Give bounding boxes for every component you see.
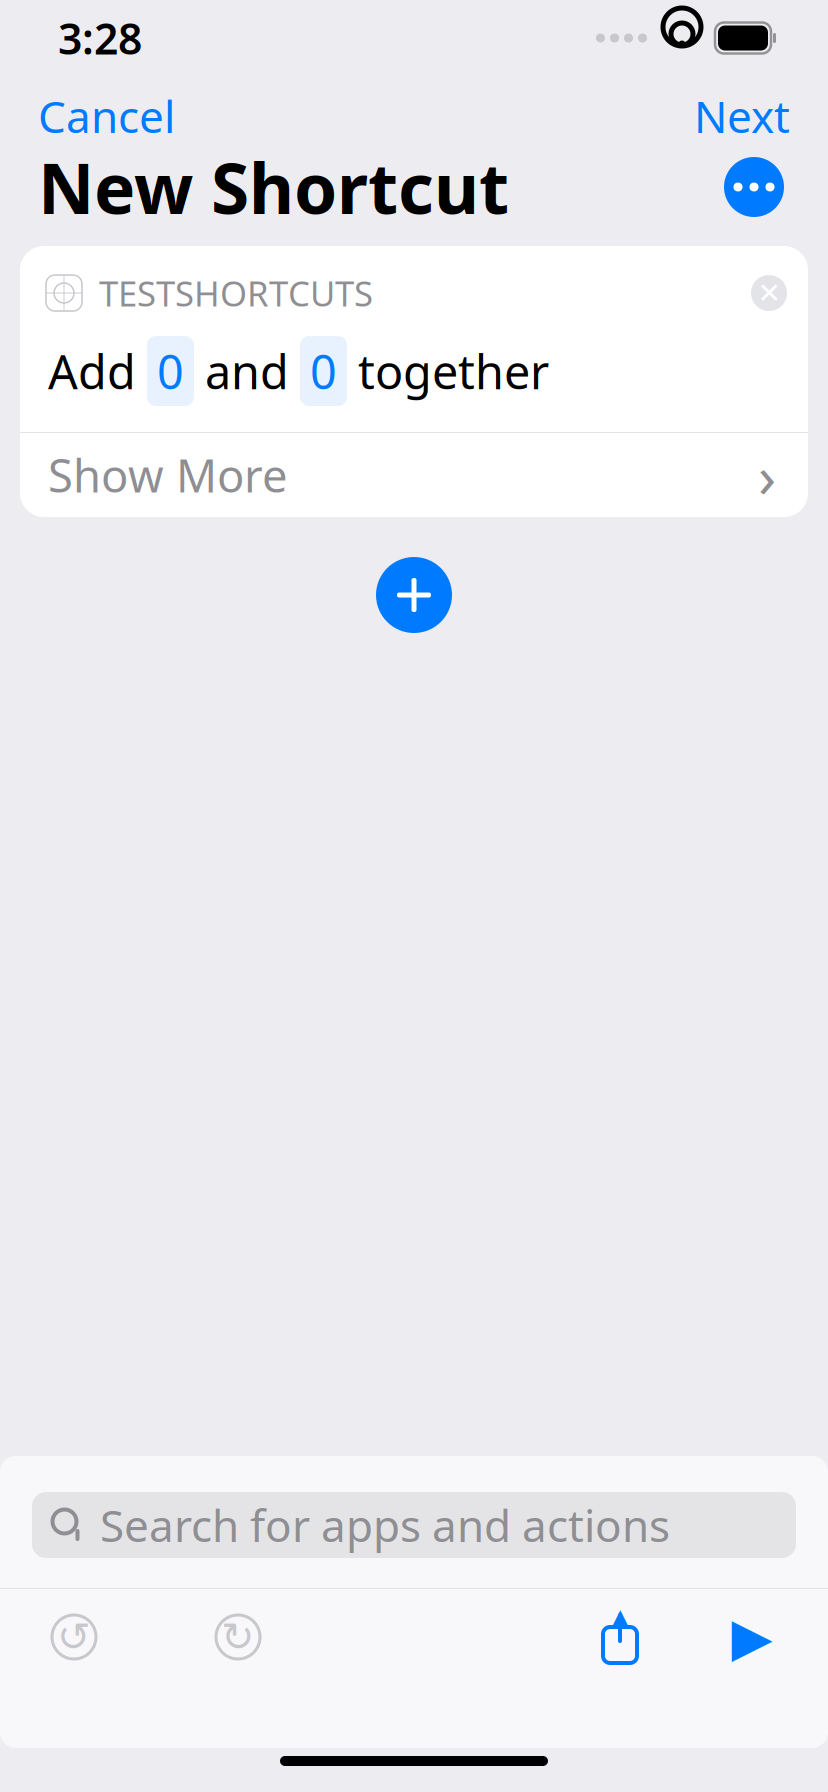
staticText: ↺ <box>57 1614 91 1660</box>
staticText: Add <box>48 340 136 402</box>
button[interactable]: Cancel <box>38 81 175 151</box>
staticText: Next <box>694 87 790 145</box>
button[interactable]: Share <box>586 1609 654 1665</box>
staticText: TESTSHORTCUTS <box>99 270 373 316</box>
staticText: Search for apps and actions <box>100 1496 670 1554</box>
button[interactable]: Undo <box>40 1613 108 1661</box>
button[interactable]: More options <box>724 157 784 217</box>
button[interactable]: Next <box>694 81 790 151</box>
staticText: 3:28 <box>58 10 142 66</box>
staticText: 0 <box>157 340 184 402</box>
button[interactable]: Show More <box>20 433 808 517</box>
staticText: and <box>205 340 289 402</box>
staticText: together <box>358 340 549 402</box>
button[interactable]: Redo <box>204 1613 272 1661</box>
staticText: ▲ <box>611 1604 628 1630</box>
staticText: › <box>758 436 776 514</box>
staticText: Cancel <box>38 87 175 145</box>
button[interactable]: Search for apps and actions <box>32 1492 796 1558</box>
staticText: Show More <box>48 445 288 505</box>
button[interactable]: Remove action <box>751 275 787 311</box>
staticText: 0 <box>310 340 337 402</box>
button[interactable]: Run shortcut <box>718 1613 786 1661</box>
staticText: ✕ <box>757 277 780 309</box>
staticText: ▶ <box>731 1607 772 1667</box>
staticText: New Shortcut <box>38 141 509 233</box>
staticText: ↻ <box>221 1614 255 1660</box>
button[interactable]: Add action <box>376 557 452 633</box>
